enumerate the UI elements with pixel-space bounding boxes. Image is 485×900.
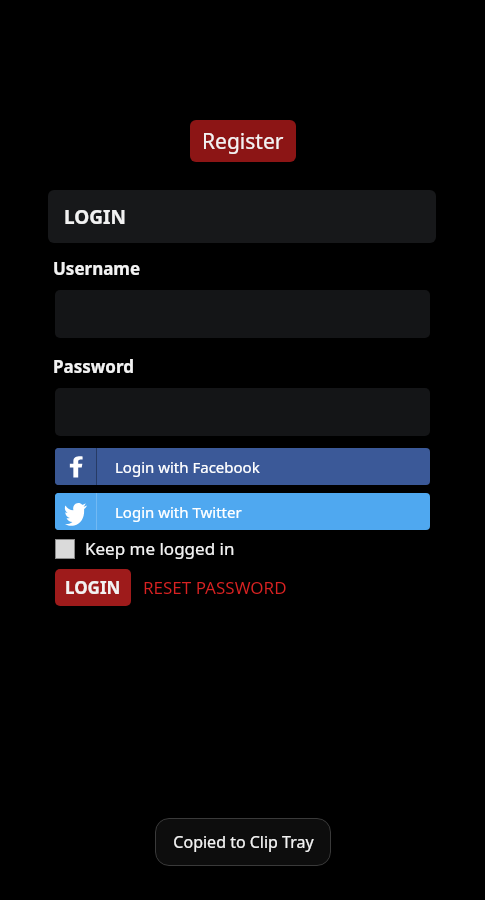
- button[interactable]: Login with Twitter: [55, 493, 430, 530]
- button[interactable]: LOGIN: [55, 569, 131, 606]
- staticText: LOGIN: [65, 576, 121, 599]
- staticText: Register: [202, 127, 284, 156]
- staticText: Password: [53, 355, 134, 378]
- staticText: Keep me logged in: [85, 537, 235, 560]
- staticText: Login with Twitter: [115, 502, 242, 522]
- staticText: Username: [53, 257, 141, 280]
- staticText: LOGIN: [64, 204, 126, 230]
- button[interactable]: Register: [190, 120, 296, 162]
- staticText: Copied to Clip Tray: [173, 831, 314, 853]
- staticText: Login with Facebook: [115, 457, 260, 477]
- button[interactable]: RESET PASSWORD: [131, 570, 299, 605]
- button[interactable]: Login with Facebook: [55, 448, 430, 485]
- staticText: RESET PASSWORD: [143, 576, 287, 599]
- button[interactable]: Keep me logged in: [55, 537, 235, 560]
